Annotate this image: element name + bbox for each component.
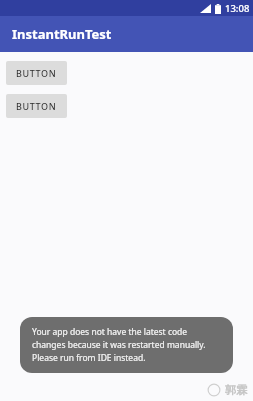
staticText: BUTTON (16, 67, 57, 79)
staticText: InstantRunTest (12, 25, 112, 43)
staticText: 郭霖 (225, 383, 247, 397)
staticText: 13:08 (225, 2, 250, 15)
staticText: BUTTON (16, 100, 57, 112)
button[interactable]: BUTTON (6, 94, 67, 118)
button[interactable]: BUTTON (6, 61, 67, 85)
button[interactable]: Your app does not have the latest code c… (20, 317, 233, 373)
staticText: Your app does not have the latest code c… (32, 326, 221, 364)
